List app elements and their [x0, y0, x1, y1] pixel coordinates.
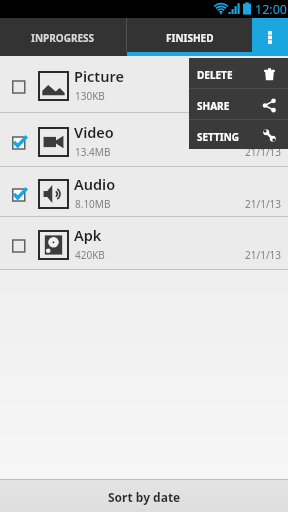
staticText: SETTING: [197, 130, 240, 144]
button[interactable]: Picture: [0, 56, 288, 112]
staticText: 21/1/13: [245, 248, 282, 262]
staticText: Sort by date: [108, 489, 181, 505]
button[interactable]: SETTING: [189, 120, 288, 149]
button[interactable]: More options: [252, 18, 288, 52]
button[interactable]: FINISHED: [127, 18, 252, 52]
staticText: Audio: [74, 174, 116, 194]
button[interactable]: Sort by date: [0, 479, 288, 512]
staticText: Video: [74, 122, 114, 142]
button[interactable]: Apk: [0, 217, 288, 269]
staticText: FINISHED: [166, 31, 214, 45]
staticText: 12:00: [255, 1, 287, 18]
staticText: INPROGRESS: [31, 31, 95, 45]
staticText: Picture: [74, 66, 124, 86]
staticText: DELETE: [197, 68, 233, 82]
staticText: Apk: [74, 225, 102, 245]
button[interactable]: INPROGRESS: [0, 18, 126, 52]
staticText: 13.4MB: [75, 145, 111, 159]
button[interactable]: Video: [0, 113, 288, 166]
staticText: SHARE: [197, 99, 230, 113]
staticText: 420KB: [75, 248, 105, 262]
staticText: 21/1/13: [245, 197, 282, 211]
staticText: 8.10MB: [75, 197, 111, 211]
staticText: 21/1/13: [245, 145, 282, 159]
staticText: 21/1/13: [245, 89, 282, 103]
button[interactable]: Audio: [0, 167, 288, 216]
staticText: 130KB: [75, 89, 105, 103]
button[interactable]: DELETE: [189, 58, 288, 88]
button[interactable]: SHARE: [189, 89, 288, 119]
